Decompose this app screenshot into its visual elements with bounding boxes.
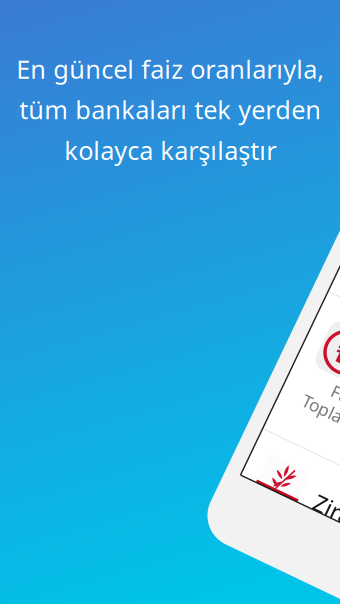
staticText: ₺ [339, 355, 340, 396]
staticText: En güncel faiz oranlarıyla, tüm bankalar… [16, 52, 324, 167]
